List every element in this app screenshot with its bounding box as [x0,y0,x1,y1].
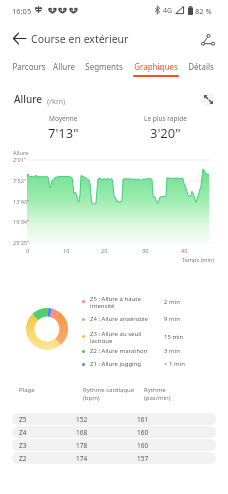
button[interactable]: Segments [80,61,128,79]
button[interactable]: Partager [197,28,219,50]
staticText: 174 [76,454,88,463]
staticText: Segments [85,61,123,72]
staticText: 7'52" [13,177,27,185]
staticText: 19'34" [13,218,30,226]
button[interactable]: Z5 : Allure à haute intensité [82,295,216,308]
button[interactable]: Z1 : Allure jogging [82,360,216,368]
staticText: Moyenne [49,114,78,123]
button[interactable]: Z4 [12,426,216,438]
staticText: Parcours [12,61,46,72]
staticText: 4G [163,6,173,16]
staticText: 178 [76,441,88,450]
staticText: 7'13" [48,124,79,140]
staticText: Le plus rapide [144,114,187,123]
staticText: 157 [137,454,149,463]
button[interactable]: Z4 : Allure anaérobie [82,315,216,323]
staticText: 3'20" [150,124,181,140]
staticText: (/km) [47,96,66,106]
staticText: Z2 : Allure marathon [90,347,148,355]
staticText: Allure [14,92,42,106]
staticText: Rythme cardiaque (bpm) [83,386,135,402]
staticText: Z5 [19,415,27,424]
button[interactable]: Z3 : Allure au seuil lactique [82,330,216,343]
staticText: 160 [137,441,149,450]
staticText: 25'25" [13,239,30,247]
button[interactable]: Détails [177,61,225,79]
staticText: Z4 : Allure anaérobie [90,315,148,323]
button[interactable]: Z3 [12,439,216,451]
staticText: Rythme (pas/min) [144,386,171,402]
button[interactable]: Retour [7,27,31,50]
staticText: Z1 : Allure jogging [90,360,142,368]
staticText: Z2 [19,454,27,463]
staticText: 2 min [164,298,180,306]
staticText: Course en extérieur [31,32,129,46]
staticText: 15 min [164,333,184,341]
staticText: Allure [53,61,75,72]
button[interactable]: Z2 [12,452,216,464]
button[interactable]: Parcours [5,61,53,79]
staticText: 20 [101,247,108,255]
staticText: 30 [142,247,149,255]
staticText: 16:05 [12,6,32,16]
staticText: 2'01" [13,156,27,164]
staticText: Temps (min) [182,256,215,264]
button[interactable]: Z2 : Allure marathon [82,347,216,355]
button[interactable]: Allure [40,61,88,79]
staticText: 0 [26,247,30,255]
staticText: Détails [188,61,214,72]
staticText: 9 min [164,315,180,323]
staticText: Allure [13,149,29,157]
staticText: 82 % [195,6,212,16]
staticText: Graphiques [134,61,178,72]
staticText: 3 min [164,347,180,355]
staticText: Z4 [19,428,27,437]
staticText: 40 [181,247,188,255]
staticText: 152 [76,415,88,424]
staticText: 160 [137,428,149,437]
staticText: < 1 min [164,360,185,368]
button[interactable]: Agrandir [201,92,215,106]
staticText: 161 [137,415,149,424]
staticText: 13'43" [13,198,30,206]
button[interactable]: Graphiques [132,61,180,79]
staticText: Z3 [19,441,27,450]
button[interactable]: Z5 [12,413,216,425]
staticText: 168 [76,428,88,437]
staticText: 10 [63,247,70,255]
staticText: Z3 : Allure au seuil lactique [90,330,142,343]
staticText: Z5 : Allure à haute intensité [90,295,141,308]
staticText: Plage [19,386,35,394]
